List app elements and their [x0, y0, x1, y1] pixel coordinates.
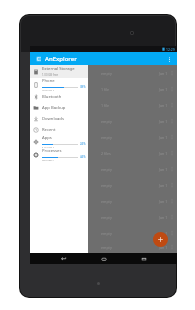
button[interactable]: empty	[88, 225, 177, 241]
staticText: empty	[101, 199, 112, 204]
staticText: 1.04 GB free	[42, 147, 59, 148]
button[interactable]: Home	[96, 253, 112, 264]
staticText: Jan 1	[159, 199, 168, 204]
staticText: 800 MB free	[42, 160, 58, 161]
staticText: Jan 1	[159, 245, 168, 250]
staticText: empty	[101, 119, 112, 124]
staticText: Bluetooth	[42, 94, 62, 100]
staticText: empty	[101, 215, 112, 220]
staticText: Jan 1	[159, 135, 168, 140]
staticText: Recent	[42, 127, 56, 133]
staticText: 2 files	[101, 151, 111, 156]
staticText: empty	[101, 245, 112, 250]
staticText: App Backup	[42, 105, 66, 111]
staticText: Apps	[42, 135, 52, 141]
staticText: Jan 1	[159, 231, 168, 236]
staticText: External Storage	[42, 66, 75, 72]
staticText: Jan 1	[159, 119, 168, 124]
staticText: 1 file	[101, 103, 110, 108]
button[interactable]: Create new	[153, 232, 168, 247]
staticText: 24%	[80, 142, 86, 146]
staticText: 12:29	[166, 47, 175, 52]
staticText: 44%	[80, 155, 86, 159]
button[interactable]: External Storage	[30, 65, 88, 78]
staticText: Jan 1	[159, 71, 168, 76]
button[interactable]: Back	[55, 253, 71, 264]
staticText: AnExplorer	[45, 55, 77, 63]
button[interactable]: Recent apps	[136, 253, 152, 264]
staticText: empty	[101, 183, 112, 188]
staticText: Processes	[42, 148, 62, 154]
button[interactable]: More options	[164, 54, 174, 64]
staticText: Jan 1	[159, 183, 168, 188]
button[interactable]: Recent	[30, 124, 88, 135]
staticText: Jan 1	[159, 103, 168, 108]
staticText: Jan 1	[159, 87, 168, 92]
button[interactable]: Processes	[30, 148, 88, 161]
button[interactable]: App Backup	[30, 102, 88, 113]
staticText: Phone	[42, 78, 55, 84]
button[interactable]: Bluetooth	[30, 91, 88, 102]
staticText: empty	[101, 167, 112, 172]
staticText: 38%	[80, 85, 86, 89]
staticText: Jan 1	[159, 151, 168, 156]
staticText: Jan 1	[159, 167, 168, 172]
button[interactable]: Phone	[30, 78, 88, 91]
button[interactable]: Open navigation drawer	[33, 54, 43, 64]
staticText: empty	[101, 231, 112, 236]
staticText: Downloads	[42, 116, 64, 122]
button[interactable]: empty	[88, 241, 177, 253]
button[interactable]: Downloads	[30, 113, 88, 124]
staticText: 7.08 GB free	[42, 90, 59, 91]
staticText: empty	[101, 135, 112, 140]
staticText: 1 file	[101, 87, 110, 92]
staticText: 1.00 GB free	[42, 73, 59, 77]
staticText: Jan 1	[159, 215, 168, 220]
button[interactable]: Apps	[30, 135, 88, 148]
staticText: empty	[101, 71, 112, 76]
